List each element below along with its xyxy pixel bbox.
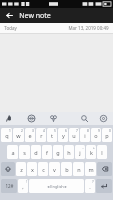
button[interactable]: ◂ English ▸ [29,179,84,193]
button[interactable]: n [73,162,84,176]
staticText: r [40,132,43,139]
staticText: , [22,183,24,190]
staticText: d [34,149,38,156]
staticText: 12# [5,183,14,189]
button[interactable]: d [31,145,41,159]
button[interactable]: m [85,162,96,176]
button[interactable]: 5 [47,128,57,142]
staticText: 5 [54,129,56,133]
button[interactable]: Enter [96,179,112,193]
button[interactable]: ? [85,179,95,193]
staticText: 7 [76,129,78,133]
staticText: 3 [32,129,34,133]
button[interactable]: Settings [98,113,109,124]
button[interactable]: s [19,145,30,159]
button[interactable]: g [53,145,63,159]
button[interactable]: a [7,145,18,159]
staticText: l [101,149,103,156]
staticText: 1 [9,129,11,133]
button[interactable]: h [64,145,74,159]
button[interactable]: b [61,162,72,176]
staticText: w [16,132,21,139]
button[interactable]: x [27,162,37,176]
staticText: i [84,132,86,139]
button[interactable]: 6 [58,128,68,142]
button[interactable]: - [75,145,85,159]
staticText: ◂ English ▸ [47,184,67,189]
staticText: k [90,149,93,156]
staticText: c [42,166,45,173]
staticText: 4 [43,129,45,133]
staticText: n [77,166,81,173]
staticText: b [65,166,69,173]
button[interactable]: 8 [80,128,90,142]
button[interactable]: c [38,162,48,176]
button[interactable]: 2 [13,128,24,142]
staticText: g [56,149,60,156]
staticText: ! [26,180,27,184]
button[interactable]: 9 [91,128,101,142]
staticText: h [67,149,71,156]
staticText: 2 [21,129,23,133]
staticText: 9 [98,129,100,133]
staticText: j [79,149,81,156]
button[interactable]: Handwriting input [4,113,15,124]
staticText: a [11,149,15,156]
button[interactable]: 3 [25,128,35,142]
button[interactable]: v [49,162,60,176]
button[interactable]: 4 [36,128,46,142]
button[interactable]: 1 [1,128,12,142]
button[interactable]: Stickers [48,113,59,124]
button[interactable]: 7 [69,128,79,142]
staticText: t [51,132,53,139]
staticText: x [31,166,34,173]
staticText: + [93,146,95,150]
button[interactable]: l [97,145,107,159]
staticText: Mar 13, 2019 00:49 [68,25,109,31]
staticText: 6 [65,129,67,133]
staticText: m [88,166,94,173]
button[interactable]: z [16,162,26,176]
staticText: z [20,166,23,173]
staticText: v [53,166,56,173]
staticText: - [82,146,84,150]
button[interactable]: Emoji [26,113,37,124]
button[interactable]: Search [79,113,90,124]
staticText: u [72,132,76,139]
staticText: f [46,149,48,156]
staticText: New note [19,11,51,21]
button[interactable]: f [42,145,52,159]
staticText: 8 [87,129,89,133]
button[interactable]: ! [18,179,28,193]
staticText: q [5,132,9,139]
staticText: p [105,132,109,139]
staticText: . [89,183,91,190]
staticText: e [28,132,32,139]
staticText: Today [4,25,17,31]
button[interactable]: 12# [1,179,17,193]
staticText: s [23,149,26,156]
button[interactable]: Backspace [97,162,112,176]
staticText: o [94,132,98,139]
button[interactable]: Shift [1,162,15,176]
staticText: ? [92,180,94,184]
button[interactable]: + [86,145,96,159]
button[interactable]: Today [0,23,113,33]
staticText: 0 [109,129,111,133]
staticText: y [62,132,65,139]
button[interactable]: Navigate back [3,9,16,22]
button[interactable]: 0 [102,128,112,142]
